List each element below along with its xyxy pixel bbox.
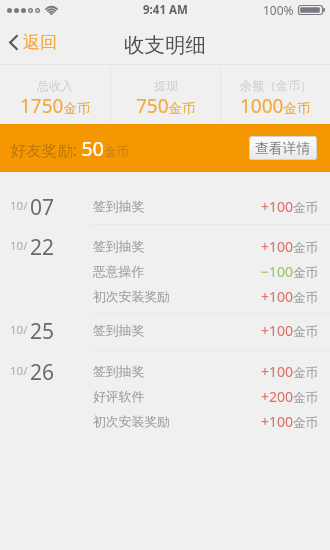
staticText: 100% [263,2,294,18]
staticText: 750金币 [136,93,196,119]
button[interactable]: 初次安装奖励 [92,284,330,309]
staticText: 提现 [154,78,178,93]
staticText: +100金币 [261,362,319,381]
staticText: 签到抽奖 [93,239,145,255]
staticText: 26 [30,358,55,387]
button[interactable]: 签到抽奖 [92,318,330,343]
staticText: 10/ [10,322,28,338]
button[interactable]: 签到抽奖 [92,194,330,219]
button[interactable]: 初次安装奖励 [92,409,330,434]
staticText: +200金币 [261,387,319,406]
staticText: 9:41 AM [143,2,188,18]
staticText: 查看详情 [255,140,311,157]
staticText: 25 [30,317,55,346]
staticText: +100金币 [261,321,319,340]
button[interactable]: 恶意操作 [92,259,330,284]
staticText: −100金币 [261,262,319,281]
staticText: 初次安装奖励 [93,414,170,430]
staticText: 收支明细 [124,32,206,58]
staticText: 签到抽奖 [93,323,145,339]
staticText: 好友奖励: 50金币 [11,135,130,162]
staticText: +100金币 [261,197,319,216]
staticText: +100金币 [261,412,319,431]
button[interactable]: Back [0,27,67,58]
staticText: 初次安装奖励 [93,289,170,305]
staticText: 07 [30,193,55,222]
button[interactable]: 查看详情 [249,136,317,160]
staticText: 总收入 [37,78,73,93]
staticText: 返回 [23,32,57,53]
staticText: 恶意操作 [93,264,145,280]
staticText: 1750金币 [20,93,91,119]
staticText: 签到抽奖 [93,364,145,380]
staticText: 1000金币 [240,93,311,119]
staticText: 10/ [10,238,28,254]
button[interactable]: 好评软件 [92,384,330,409]
staticText: 10/ [10,363,28,379]
staticText: 22 [30,233,55,262]
staticText: 签到抽奖 [93,199,145,215]
button[interactable]: 签到抽奖 [92,234,330,259]
other: Back [9,34,18,51]
staticText: 余额（金币） [240,78,312,93]
button[interactable]: 签到抽奖 [92,359,330,384]
staticText: 10/ [10,198,28,214]
staticText: +100金币 [261,287,319,306]
staticText: 好评软件 [93,389,145,405]
staticText: +100金币 [261,237,319,256]
